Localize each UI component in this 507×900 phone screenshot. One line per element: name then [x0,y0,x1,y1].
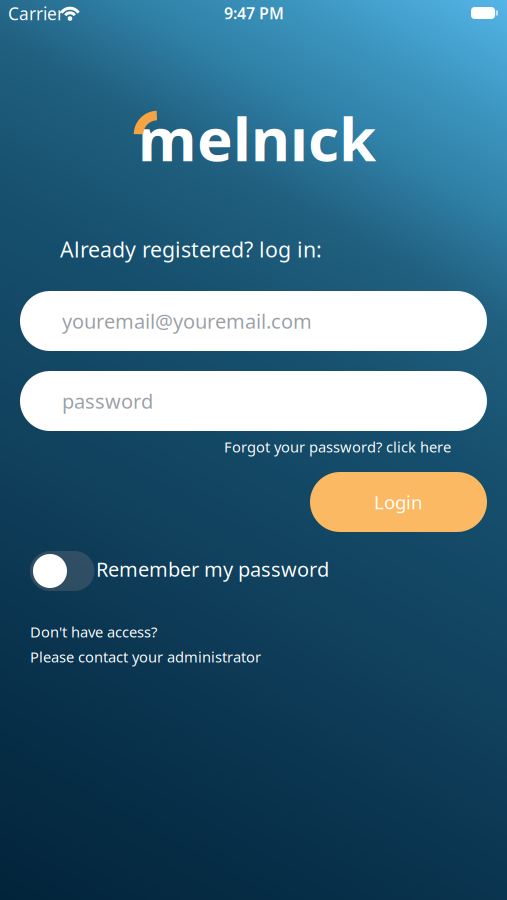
staticText: youremail@youremail.com [62,308,312,334]
button[interactable]: Password [20,371,487,431]
button[interactable]: Remember my password [30,551,329,591]
staticText: Already registered? log in: [60,235,322,263]
staticText: Don't have access? [30,622,157,641]
button[interactable]: Email [20,291,487,351]
staticText: melnıck [138,98,376,178]
staticText: Remember my password [96,556,329,582]
staticText: password [62,388,153,414]
staticText: Please contact your administrator [30,647,261,666]
button[interactable]: Login [310,472,487,532]
button[interactable]: Forgot your password? click here [224,437,451,456]
staticText: Forgot your password? click here [224,437,451,456]
staticText: 9:47 PM [224,2,284,24]
staticText: Login [374,490,423,514]
staticText: Carrier [8,2,64,25]
